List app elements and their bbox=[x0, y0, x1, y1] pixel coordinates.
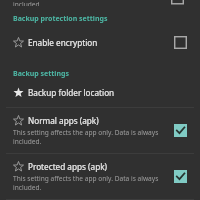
button[interactable]: Normal apps (apk) bbox=[0, 108, 200, 153]
staticText: Normal apps (apk) bbox=[28, 115, 99, 126]
staticText: included. bbox=[13, 0, 42, 6]
button[interactable]: Enable encryption bbox=[171, 33, 190, 52]
button[interactable]: Backup folder location bbox=[0, 82, 200, 107]
staticText: Protected apps (apk) bbox=[28, 161, 107, 172]
staticText: Enable encryption bbox=[28, 37, 98, 48]
button[interactable]: Enable encryption bbox=[0, 27, 200, 61]
staticText: Backup protection settings bbox=[13, 14, 108, 24]
button[interactable]: included. bbox=[0, 0, 200, 6]
staticText: Backup settings bbox=[13, 69, 69, 79]
button[interactable]: Normal apps (apk) bbox=[171, 121, 190, 140]
button[interactable]: Protected apps (apk) bbox=[171, 167, 190, 186]
staticText: This setting affects the app only. Data … bbox=[13, 128, 159, 146]
button[interactable]: Protected apps (apk) bbox=[0, 154, 200, 199]
staticText: This setting affects the app only. Data … bbox=[13, 174, 159, 192]
staticText: Backup folder location bbox=[28, 87, 115, 98]
